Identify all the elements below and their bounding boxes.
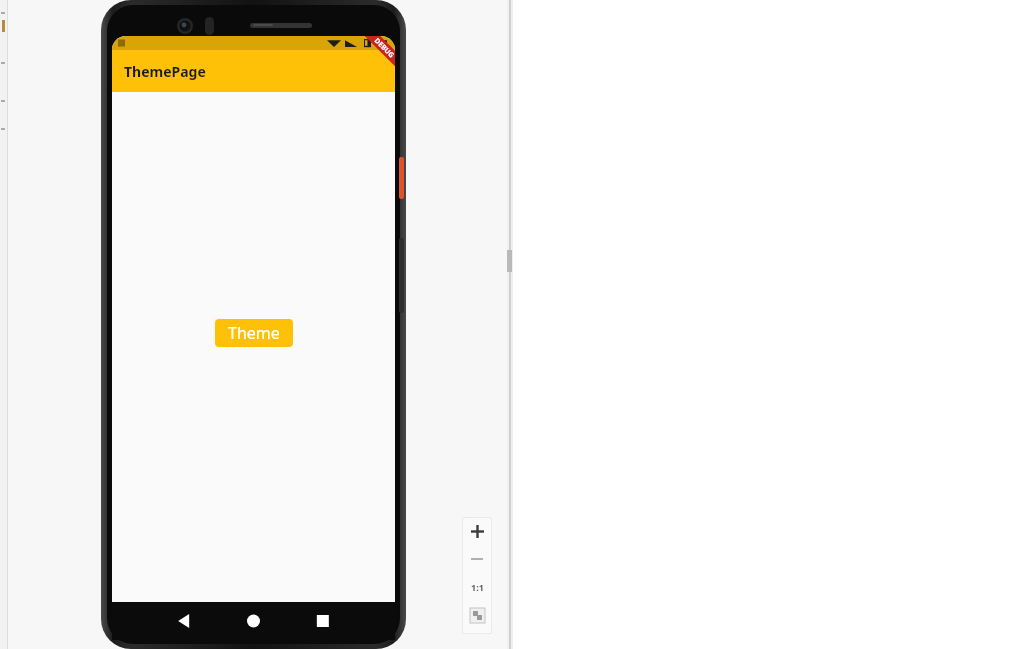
button[interactable]: Fit to screen: [462, 601, 492, 629]
button[interactable]: Recent apps: [301, 602, 395, 640]
staticText: DEBUG: [372, 36, 395, 61]
staticText: 1:1: [471, 581, 484, 593]
button[interactable]: Home: [207, 602, 301, 640]
staticText: ThemePage: [124, 62, 206, 81]
staticText: Theme: [228, 322, 280, 344]
button[interactable]: 1:1: [462, 573, 492, 601]
button[interactable]: Zoom in: [462, 517, 492, 545]
button[interactable]: Back: [112, 602, 207, 640]
button[interactable]: Theme: [215, 319, 293, 347]
button[interactable]: Zoom out: [462, 545, 492, 573]
